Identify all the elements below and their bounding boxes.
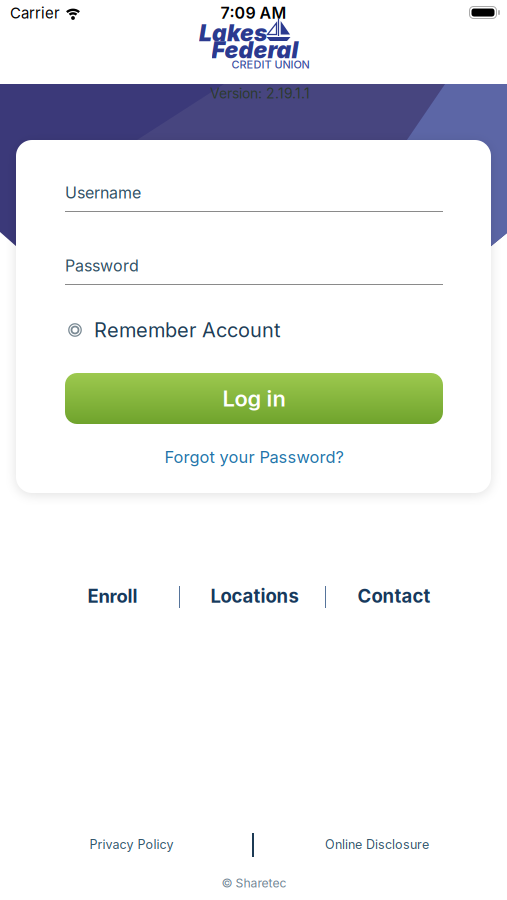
button[interactable]: Locations [202,577,306,615]
staticText: Locations [210,585,298,607]
button[interactable]: Log in [65,373,443,424]
button[interactable]: Forgot your Password? [160,443,347,471]
staticText: Privacy Policy [89,837,173,852]
staticText: Password [65,256,139,275]
staticText: CREDIT UNION [231,58,309,71]
staticText: Forgot your Password? [164,447,343,467]
button[interactable]: Enroll [79,577,145,615]
staticText: Carrier [10,4,60,22]
staticText: Log in [222,385,285,412]
staticText: Username [65,183,141,202]
staticText: © Sharetec [221,876,286,890]
button[interactable]: Remember Account [67,314,281,346]
button[interactable]: Online Disclosure [319,831,435,858]
staticText: Federal [211,36,298,64]
staticText: Online Disclosure [325,837,429,852]
staticText: 7:09 AM [220,3,286,23]
staticText: Lakes [199,19,267,47]
button[interactable]: Privacy Policy [83,831,179,858]
staticText: Contact [357,585,430,607]
staticText: Version: 2.19.1.1 [210,85,310,102]
button[interactable]: Contact [349,577,438,615]
staticText: Remember Account [94,318,281,342]
staticText: Enroll [87,585,137,607]
